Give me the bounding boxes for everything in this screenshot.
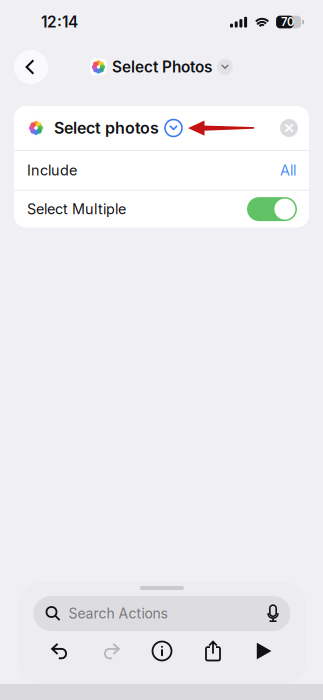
button[interactable]: Details: [136, 635, 187, 667]
button[interactable]: Select Photos: [90, 50, 233, 84]
staticText: Select Photos: [112, 58, 212, 76]
staticText: Search Actions: [68, 605, 167, 622]
button[interactable]: Run shortcut: [238, 635, 289, 667]
button[interactable]: Undo: [34, 635, 85, 667]
button[interactable]: Select Multiple: [14, 191, 309, 228]
button[interactable]: Show more options: [160, 115, 186, 141]
button[interactable]: Redo: [85, 635, 136, 667]
staticText: 70: [281, 15, 294, 29]
button[interactable]: Share: [187, 635, 238, 667]
staticText: 12:14: [41, 13, 78, 31]
staticText: Include: [27, 162, 77, 179]
button[interactable]: Delete action: [276, 115, 302, 141]
button[interactable]: Search Actions: [33, 596, 290, 631]
staticText: Select Multiple: [27, 200, 126, 218]
button[interactable]: Back: [14, 50, 48, 84]
staticText: Select photos: [54, 118, 159, 138]
button[interactable]: Include: [14, 151, 309, 190]
staticText: All: [280, 162, 296, 179]
